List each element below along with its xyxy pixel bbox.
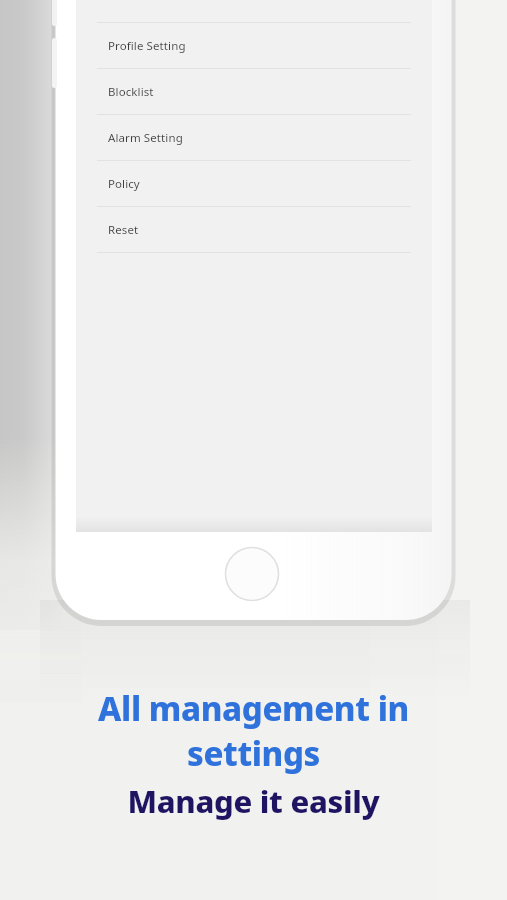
staticText: Blocklist [108, 84, 154, 100]
staticText: Alarm Setting [108, 130, 183, 146]
staticText: Manage it easily [127, 780, 380, 822]
button[interactable]: Reset [76, 207, 432, 252]
staticText: Policy [108, 176, 140, 192]
button[interactable]: Profile Setting [76, 23, 432, 68]
button[interactable]: Policy [76, 161, 432, 206]
staticText: Profile Setting [108, 38, 186, 54]
button[interactable]: Blocklist [76, 69, 432, 114]
staticText: Reset [108, 222, 139, 238]
staticText: settings [187, 731, 320, 776]
button[interactable]: Alarm Setting [76, 115, 432, 160]
staticText: All management in [98, 686, 409, 731]
